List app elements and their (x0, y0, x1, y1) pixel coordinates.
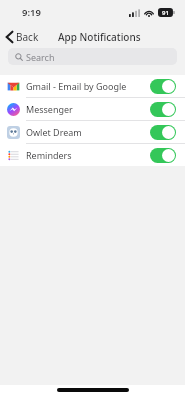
button[interactable]: Toggle notifications (150, 148, 176, 163)
button[interactable]: Reminders (0, 144, 185, 166)
staticText: Gmail - Email by Google (26, 80, 127, 92)
staticText: Owlet Dream (26, 126, 82, 138)
staticText: App Notifications (58, 30, 141, 44)
button[interactable]: Back (0, 27, 47, 47)
staticText: 9:19 (22, 6, 41, 19)
staticText: Search (26, 51, 55, 63)
button[interactable]: Toggle notifications (150, 125, 176, 140)
staticText: Back (16, 30, 39, 44)
staticText: Messenger (26, 103, 73, 115)
button[interactable]: Search (8, 48, 177, 65)
staticText: 91 (162, 9, 169, 17)
button[interactable]: Messenger (0, 98, 185, 120)
button[interactable]: Gmail - Email by Google (0, 75, 185, 97)
staticText: Reminders (26, 149, 72, 161)
button[interactable]: Toggle notifications (150, 102, 176, 117)
button[interactable]: Toggle notifications (150, 79, 176, 94)
button[interactable]: Owlet Dream (0, 121, 185, 143)
